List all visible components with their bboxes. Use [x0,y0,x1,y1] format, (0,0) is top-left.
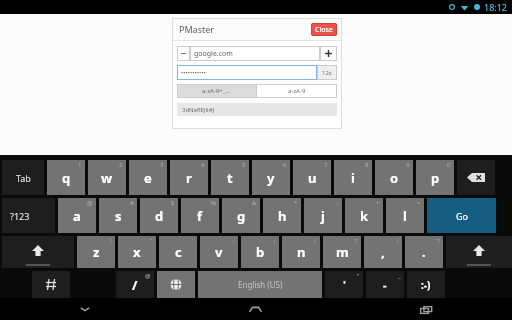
staticText: v [215,243,223,261]
staticText: @ [145,272,151,280]
staticText: google.com [194,49,233,59]
button[interactable]: c [159,236,197,268]
button[interactable]: r [170,160,208,195]
button[interactable]: v [200,236,238,268]
button[interactable]: y [252,160,290,195]
staticText: ' [343,277,346,292]
button[interactable]: . [405,236,443,268]
staticText: Go [456,210,468,222]
button[interactable]: - [366,271,404,298]
staticText: w [101,169,113,187]
staticText: 2 [119,161,123,169]
button[interactable]: Hide keyboard [0,298,170,320]
staticText: u [308,169,317,187]
button[interactable]: f [181,198,219,233]
button[interactable]: s [99,198,137,233]
button[interactable]: Home [170,298,341,320]
staticText: c [175,243,182,261]
button[interactable]: b [241,236,279,268]
staticText: n [297,243,306,261]
button[interactable]: x [118,236,156,268]
button[interactable]: i [334,160,372,195]
button[interactable]: Recents [341,298,512,320]
button[interactable]: a-zA-9 [257,84,337,98]
staticText: ? [355,237,358,245]
staticText: 3 [160,161,164,169]
staticText: _ [398,272,401,280]
staticText: PMaster [179,23,215,35]
staticText: :-) [421,278,431,292]
staticText: Close [315,25,333,35]
staticText: & [252,199,257,207]
staticText: - [337,199,339,207]
button[interactable]: Go [427,198,496,233]
staticText: / [132,276,138,294]
staticText: y [267,169,275,187]
staticText: x [133,243,141,261]
staticText: " [357,272,360,280]
button[interactable]: m [323,236,361,268]
staticText: 18:12 [484,1,508,13]
staticText: 9 [406,161,410,169]
staticText: $ [171,199,175,207]
staticText: m [336,243,349,261]
button[interactable]: a [58,198,96,233]
button[interactable] [177,46,190,61]
staticText: r [186,169,192,187]
button[interactable]: ••••••••••• [177,65,317,80]
staticText: h [278,207,287,225]
button[interactable]: o [375,160,413,195]
staticText: ! [110,237,112,245]
button[interactable]: , [364,236,402,268]
button[interactable]: a-zA-9+_... [177,84,256,98]
button[interactable]: d [140,198,178,233]
button[interactable]: ' [325,271,363,298]
button[interactable]: u [293,160,331,195]
staticText: ? [437,237,440,245]
staticText: a-zA-9+_... [202,87,231,95]
staticText: s [115,207,122,225]
button[interactable]: / [116,271,154,298]
button[interactable]: t [211,160,249,195]
button[interactable]: j [304,198,342,233]
button[interactable]: ?123 [2,198,55,233]
button[interactable]: q [47,160,85,195]
staticText: * [294,199,298,207]
button[interactable]: Settings [32,271,70,298]
staticText: z [93,243,100,261]
button[interactable]: Language [157,271,195,298]
staticText: . [422,243,426,261]
staticText: 8 [365,161,369,169]
staticText: 3dNeflEjli#J [182,106,215,114]
staticText: p [431,169,440,187]
button[interactable]: l [386,198,424,233]
button[interactable]: z [77,236,115,268]
button[interactable]: Add [320,46,337,61]
staticText: 6 [283,161,287,169]
staticText: : [233,237,235,245]
button[interactable]: k [345,198,383,233]
button[interactable]: g [222,198,260,233]
button[interactable]: n [282,236,320,268]
button[interactable]: Backspace [457,160,495,195]
button[interactable]: English (US) [198,271,322,298]
button[interactable]: w [88,160,126,195]
button[interactable]: Close [311,23,337,36]
staticText: " [150,237,153,245]
button[interactable]: Shift [2,236,74,268]
button[interactable]: :-) [407,271,445,298]
staticText: l [403,207,407,225]
button[interactable]: e [129,160,167,195]
staticText: g [237,207,246,225]
staticText: 1 [78,161,82,169]
staticText: ; [274,237,276,245]
staticText: @ [87,199,93,207]
staticText: 12s [322,69,332,77]
button[interactable]: h [263,198,301,233]
button[interactable]: google.com [190,46,320,61]
button[interactable]: Tab [2,160,44,195]
staticText: ! [397,237,399,245]
button[interactable]: Shift right [446,236,512,268]
button[interactable]: p [416,160,454,195]
staticText: b [256,243,265,261]
